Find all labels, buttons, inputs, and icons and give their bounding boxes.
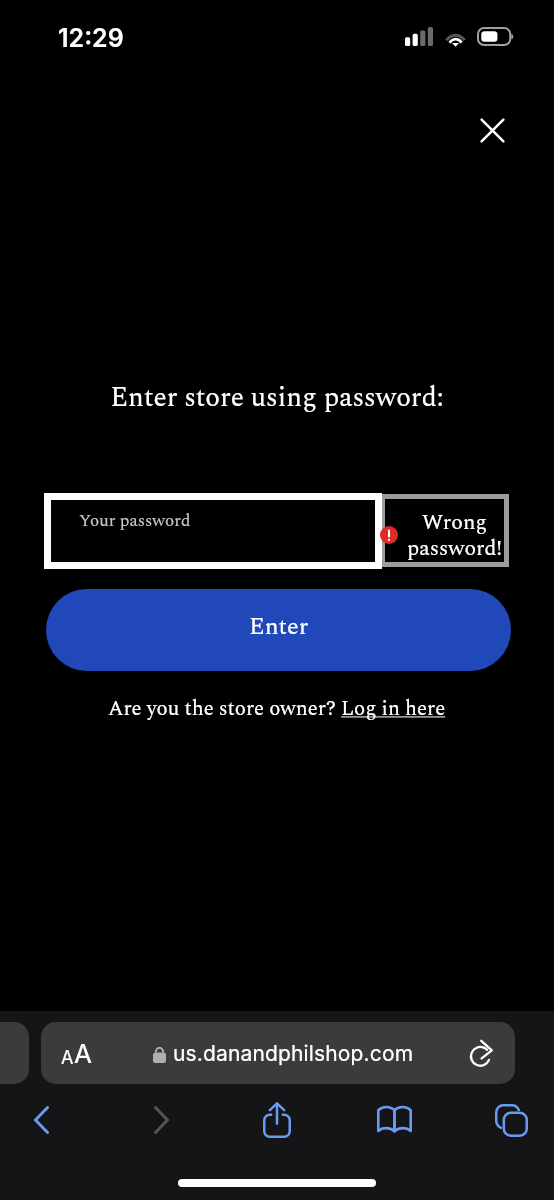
- button[interactable]: Forward: [126, 1092, 196, 1148]
- staticText: us.danandphilshop.com: [173, 1041, 414, 1066]
- staticText: Your password: [79, 508, 191, 534]
- button[interactable]: Page settings: [41, 1022, 515, 1084]
- staticText: Enter store using password:: [0, 377, 554, 418]
- button[interactable]: Close: [464, 102, 520, 158]
- button[interactable]: Enter: [46, 589, 511, 671]
- button[interactable]: Your password: [51, 500, 375, 562]
- staticText: Wrong password!: [407, 506, 502, 565]
- staticText: 12:29: [58, 23, 124, 53]
- button[interactable]: Share: [242, 1092, 312, 1148]
- button[interactable]: Bookmarks: [359, 1092, 429, 1148]
- button[interactable]: Tabs: [476, 1092, 546, 1148]
- button[interactable]: Reload: [464, 1035, 500, 1071]
- staticText: A: [74, 1038, 92, 1069]
- button[interactable]: Log in here: [341, 693, 446, 724]
- button[interactable]: Back: [6, 1092, 76, 1148]
- staticText: Enter: [249, 609, 309, 646]
- staticText: A: [61, 1047, 74, 1069]
- button[interactable]: Page settings: [50, 1030, 102, 1076]
- staticText: Are you the store owner?: [108, 693, 341, 724]
- staticText: Log in here: [341, 693, 446, 724]
